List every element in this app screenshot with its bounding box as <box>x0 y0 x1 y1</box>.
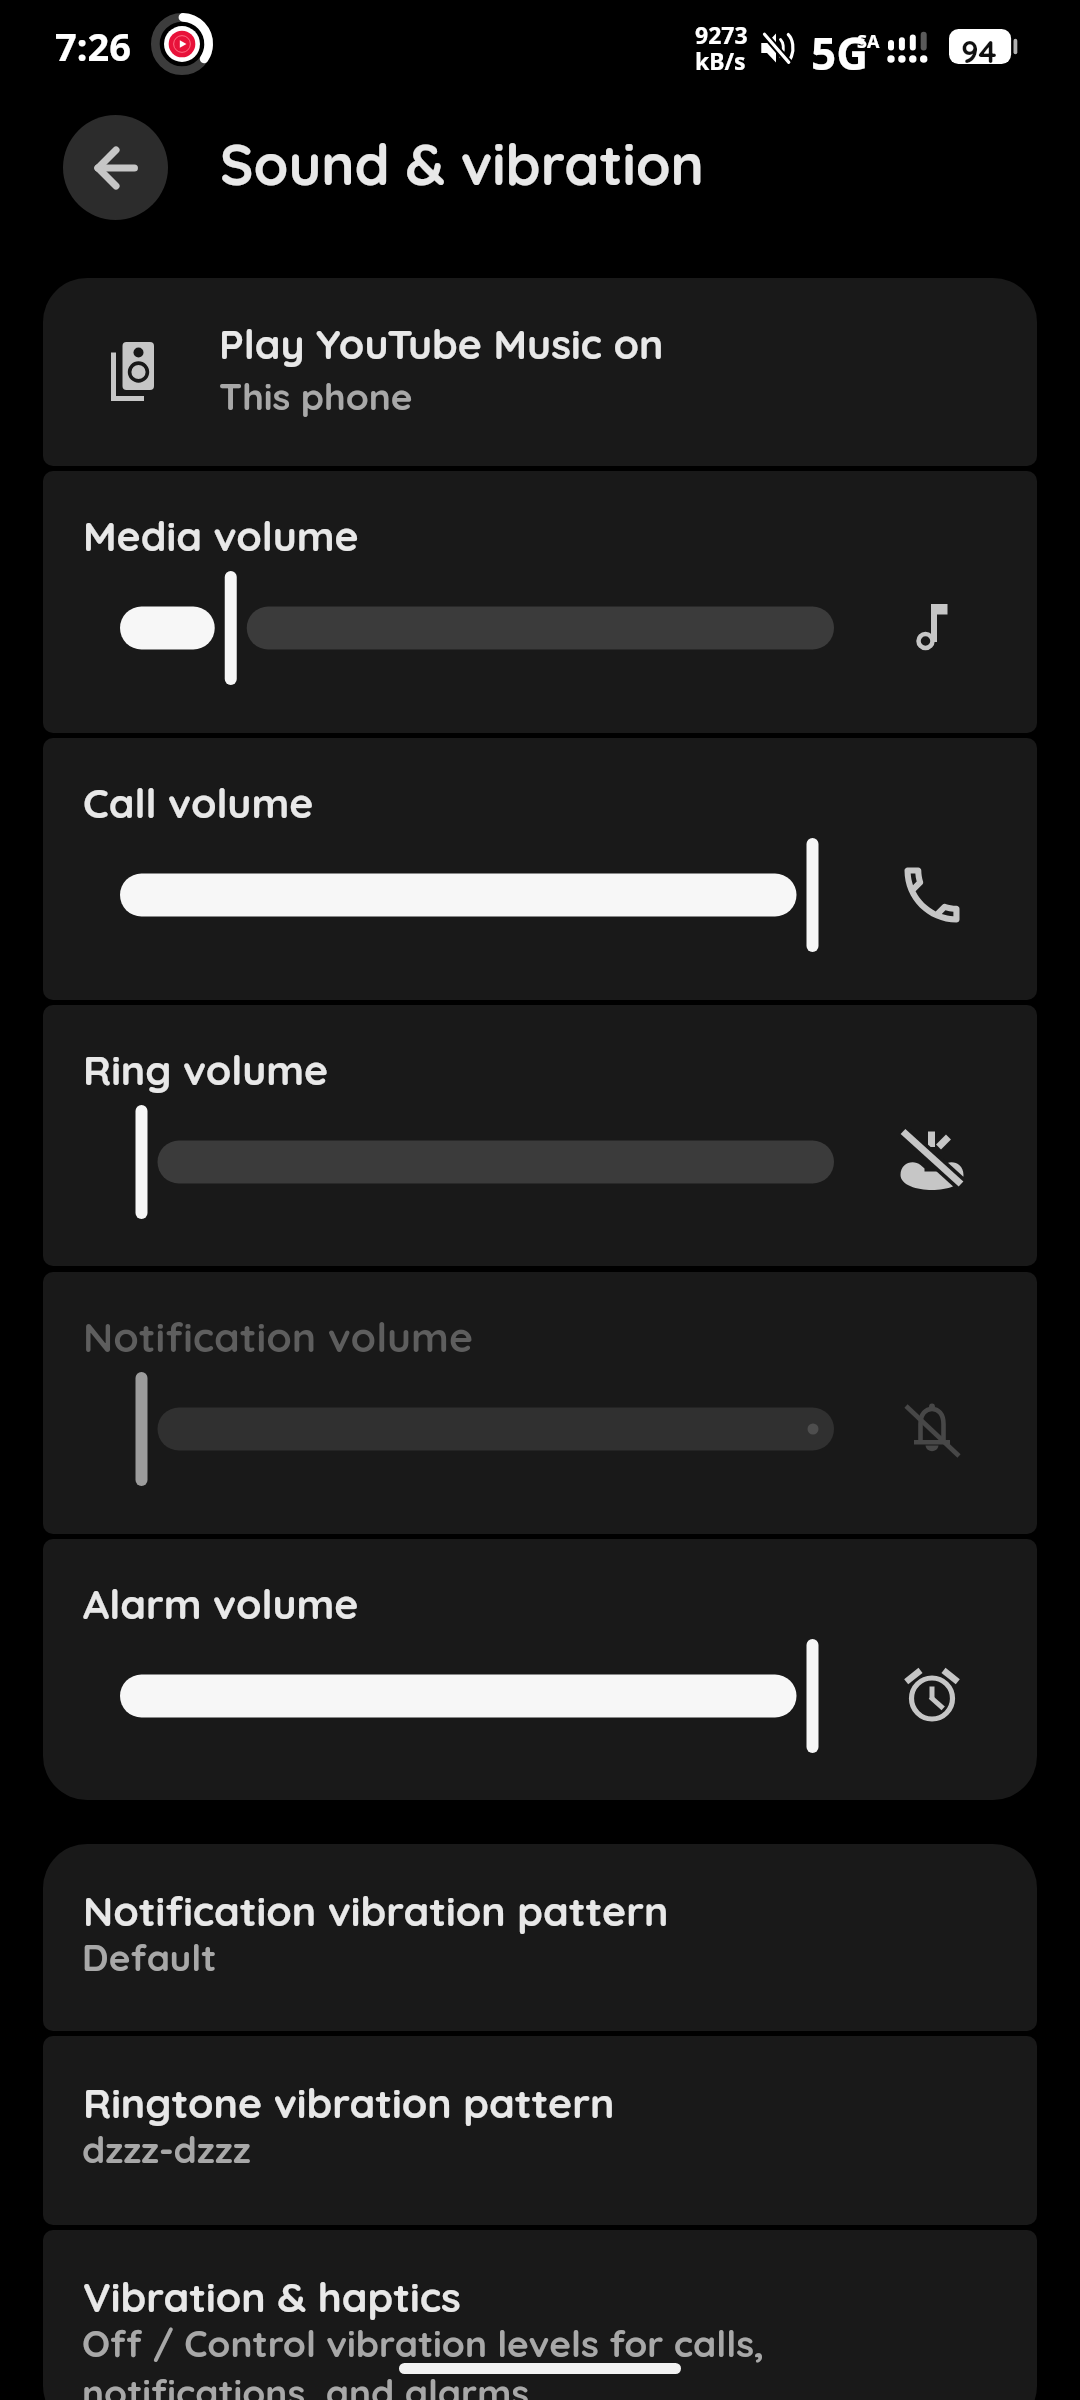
staticText: 94 <box>961 32 997 71</box>
staticText: kB/s <box>695 45 746 76</box>
button[interactable]: Play YouTube Music on <box>43 278 1037 466</box>
staticText: Vibration & haptics <box>83 2271 461 2322</box>
button[interactable]: Alarm volume <box>43 1539 1037 1800</box>
staticText: Sound & vibration <box>220 129 704 199</box>
button[interactable]: Call volume <box>43 738 1037 1000</box>
staticText: 7:26 <box>55 20 131 72</box>
staticText: Off / Control vibration levels for calls… <box>82 2320 765 2400</box>
staticText: Notification vibration pattern <box>83 1885 669 1936</box>
staticText: SA <box>857 29 880 54</box>
staticText: Call volume <box>83 777 314 828</box>
staticText: Default <box>82 1934 217 1980</box>
button[interactable]: Notification vibration pattern <box>43 1844 1037 2031</box>
staticText: Alarm volume <box>83 1578 359 1629</box>
staticText: 9273 <box>695 19 748 50</box>
button[interactable]: Back <box>63 115 168 220</box>
staticText: Notification volume <box>83 1311 474 1362</box>
button[interactable]: Ring volume <box>43 1005 1037 1266</box>
button[interactable]: Ringtone vibration pattern <box>43 2036 1037 2225</box>
staticText: This phone <box>219 373 413 419</box>
button[interactable]: Vibration & haptics <box>43 2230 1037 2400</box>
staticText: Ring volume <box>83 1044 329 1095</box>
staticText: 5G <box>811 23 869 83</box>
staticText: Media volume <box>83 510 359 561</box>
staticText: Play YouTube Music on <box>219 318 664 369</box>
staticText: Ringtone vibration pattern <box>83 2077 615 2128</box>
staticText: dzzz-dzzz <box>82 2126 251 2172</box>
button[interactable]: Notification volume <box>43 1272 1037 1534</box>
button[interactable]: Media volume <box>43 471 1037 733</box>
